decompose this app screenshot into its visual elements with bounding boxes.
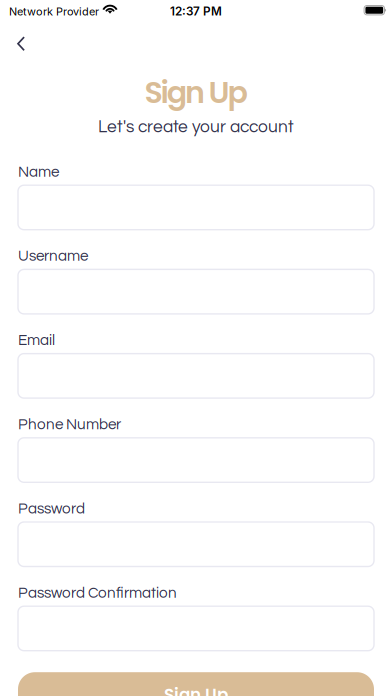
staticText: Email [18, 333, 55, 348]
staticText: Let's create your account [98, 118, 294, 136]
staticText: Phone Number [18, 417, 121, 432]
staticText: 12:37 PM [170, 4, 222, 18]
staticText: Sign Up [164, 683, 228, 696]
staticText: Username [18, 248, 88, 264]
staticText: Password [18, 501, 85, 517]
button[interactable]: Sign Up [18, 672, 374, 696]
staticText: Password Confirmation [18, 585, 177, 601]
staticText: Network Provider [9, 5, 99, 18]
staticText: Name [18, 164, 59, 180]
staticText: Sign Up [144, 71, 248, 113]
button[interactable]: Back [3, 25, 39, 61]
